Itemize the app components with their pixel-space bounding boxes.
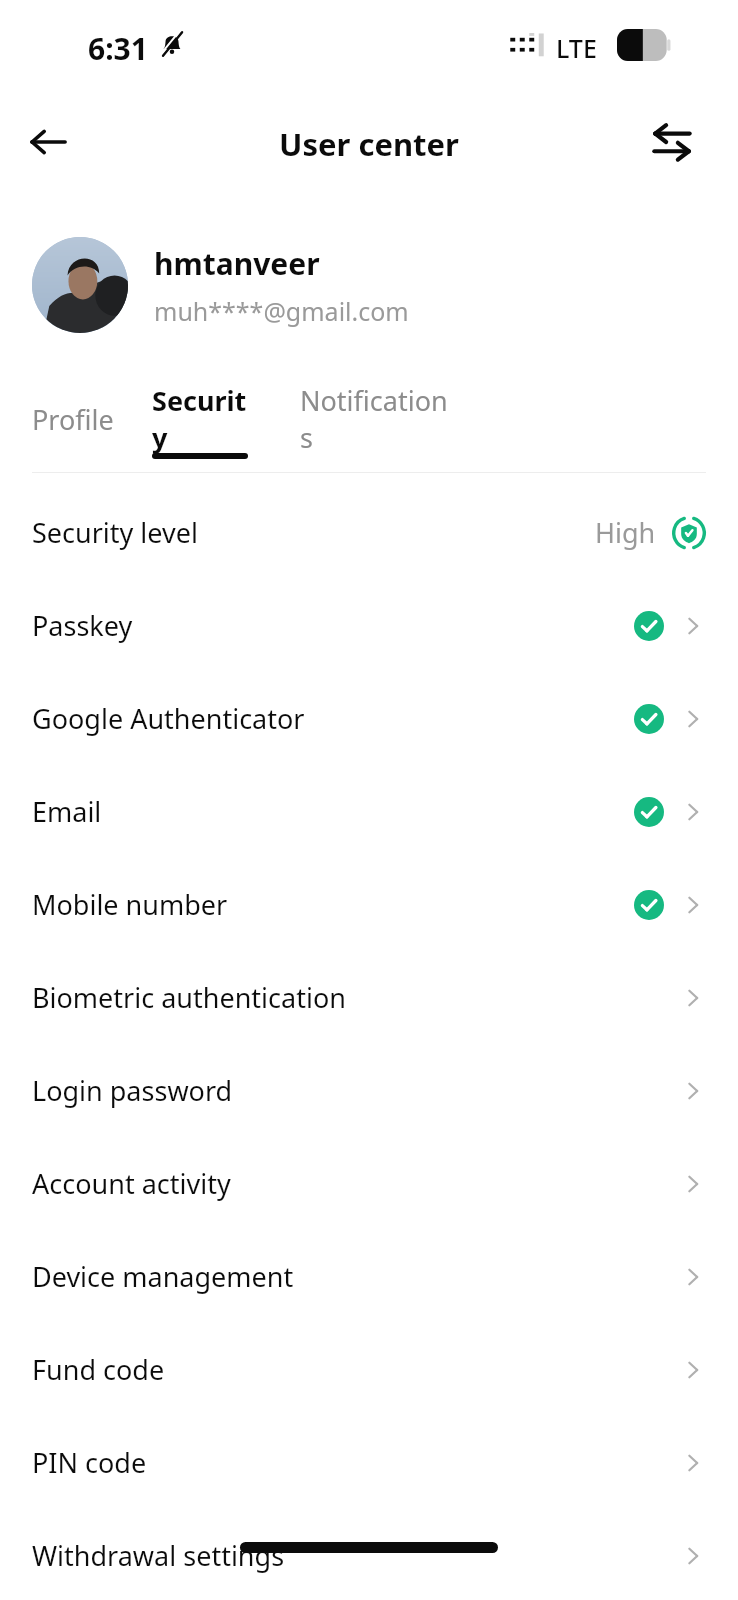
staticText: Google Authenticator	[32, 700, 305, 737]
staticText: Email	[32, 793, 102, 830]
staticText: Withdrawal settings	[32, 1537, 285, 1574]
button[interactable]: Back	[14, 108, 82, 176]
staticText: Notifications	[300, 382, 460, 456]
button[interactable]: Withdrawal settings	[0, 1509, 738, 1600]
staticText: LTE	[556, 31, 597, 65]
staticText: User center	[279, 123, 459, 165]
staticText: Profile	[32, 401, 114, 438]
button[interactable]: Login password	[0, 1044, 738, 1136]
staticText: Account activity	[32, 1165, 231, 1202]
staticText: PIN code	[32, 1444, 147, 1481]
staticText: Login password	[32, 1072, 233, 1109]
staticText: hmtanveer	[154, 243, 320, 284]
staticText: Security	[152, 382, 248, 456]
button[interactable]: Security level	[0, 497, 738, 567]
button[interactable]: hmtanveer	[0, 215, 738, 355]
button[interactable]: Google Authenticator	[0, 672, 738, 764]
staticText: 6:31	[88, 28, 148, 69]
button[interactable]: Fund code	[0, 1323, 738, 1415]
staticText: Biometric authentication	[32, 979, 346, 1016]
staticText: muh****@gmail.com	[154, 294, 409, 328]
button[interactable]: Notifications	[300, 380, 460, 458]
button[interactable]: PIN code	[0, 1416, 738, 1508]
staticText: Device management	[32, 1258, 294, 1295]
staticText: Mobile number	[32, 886, 228, 923]
button[interactable]: Security	[152, 380, 248, 458]
staticText: Security level	[32, 514, 198, 551]
button[interactable]: Passkey	[0, 579, 738, 671]
button[interactable]: Device management	[0, 1230, 738, 1322]
button[interactable]: Mobile number	[0, 858, 738, 950]
button[interactable]: Biometric authentication	[0, 951, 738, 1043]
staticText: Passkey	[32, 607, 133, 644]
staticText: High	[595, 514, 656, 551]
button[interactable]: Email	[0, 765, 738, 857]
button[interactable]: Profile	[32, 380, 126, 458]
button[interactable]: Switch account	[638, 108, 706, 176]
staticText: Fund code	[32, 1351, 165, 1388]
button[interactable]: Account activity	[0, 1137, 738, 1229]
